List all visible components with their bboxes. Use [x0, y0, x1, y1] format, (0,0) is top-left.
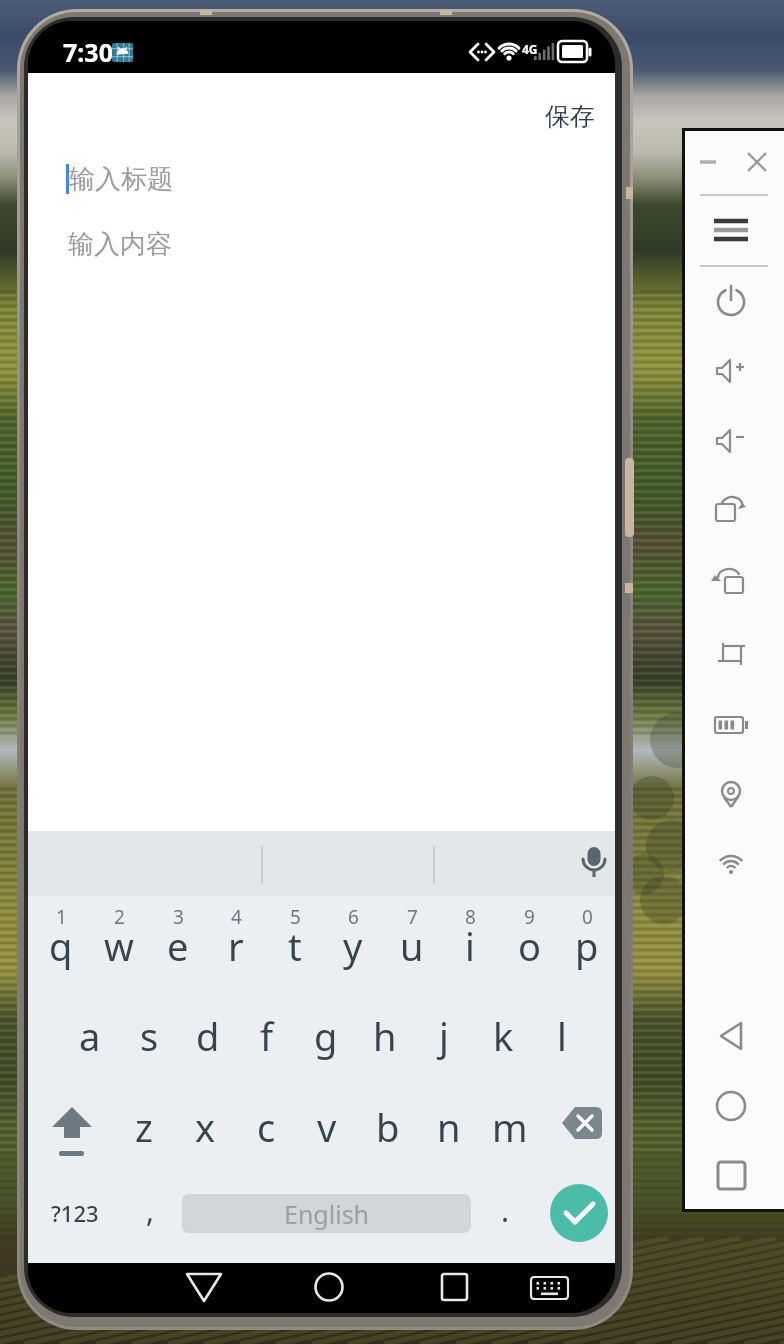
- staticText: 8: [465, 904, 476, 926]
- staticText: l: [557, 1010, 567, 1062]
- staticText: 9: [524, 904, 535, 926]
- button[interactable]: ,: [122, 1184, 178, 1236]
- button[interactable]: a: [62, 1010, 118, 1062]
- button[interactable]: [707, 288, 755, 336]
- button[interactable]: [707, 216, 755, 264]
- button[interactable]: k: [475, 1010, 531, 1062]
- staticText: 保存: [545, 101, 595, 132]
- staticText: n: [437, 1101, 461, 1153]
- staticText: c: [257, 1101, 276, 1153]
- staticText: e: [167, 920, 189, 972]
- button[interactable]: [707, 851, 755, 899]
- button[interactable]: g: [298, 1010, 354, 1062]
- button[interactable]: English: [182, 1194, 471, 1233]
- button[interactable]: 输入内容: [64, 218, 615, 270]
- staticText: z: [135, 1101, 153, 1153]
- staticText: t: [288, 920, 302, 972]
- staticText: 输入内容: [68, 228, 172, 261]
- staticText: 2: [114, 904, 125, 926]
- button[interactable]: 保存: [539, 95, 601, 138]
- staticText: q: [49, 920, 73, 972]
- button[interactable]: [707, 569, 755, 617]
- staticText: v: [317, 1101, 337, 1153]
- button[interactable]: [579, 831, 609, 891]
- button[interactable]: n: [421, 1101, 477, 1153]
- button[interactable]: [707, 357, 755, 405]
- staticText: a: [79, 1010, 101, 1062]
- button[interactable]: [432, 1263, 476, 1313]
- staticText: o: [518, 920, 541, 972]
- staticText: 3: [173, 904, 184, 926]
- button[interactable]: s: [121, 1010, 177, 1062]
- staticText: x: [195, 1101, 216, 1153]
- staticText: f: [260, 1010, 274, 1062]
- button[interactable]: [182, 1263, 226, 1313]
- staticText: g: [314, 1010, 338, 1062]
- button[interactable]: [44, 1101, 100, 1157]
- button[interactable]: ?123: [44, 1187, 106, 1239]
- staticText: 1: [56, 904, 67, 926]
- staticText: p: [575, 920, 599, 972]
- staticText: r: [228, 920, 244, 972]
- button[interactable]: [550, 1184, 608, 1242]
- staticText: h: [373, 1010, 397, 1062]
- staticText: 7:30: [63, 35, 113, 69]
- staticText: ,: [146, 1190, 155, 1231]
- button[interactable]: o: [501, 920, 557, 972]
- button[interactable]: l: [534, 1010, 590, 1062]
- button[interactable]: .: [477, 1184, 533, 1236]
- staticText: 4: [231, 904, 242, 926]
- button[interactable]: p: [559, 920, 615, 972]
- staticText: 4G: [522, 41, 538, 57]
- button[interactable]: b: [360, 1101, 416, 1153]
- button[interactable]: c: [238, 1101, 294, 1153]
- staticText: 0: [582, 904, 593, 926]
- staticText: 5: [290, 904, 301, 926]
- button[interactable]: 输入标题: [64, 153, 615, 205]
- staticText: 输入标题: [69, 163, 173, 196]
- button[interactable]: m: [482, 1101, 538, 1153]
- staticText: j: [439, 1010, 449, 1062]
- staticText: English: [284, 1197, 370, 1231]
- button[interactable]: [307, 1263, 351, 1313]
- button[interactable]: f: [239, 1010, 295, 1062]
- staticText: b: [376, 1101, 400, 1153]
- button[interactable]: q: [33, 920, 89, 972]
- staticText: d: [196, 1010, 220, 1062]
- staticText: 7: [407, 904, 418, 926]
- button[interactable]: z: [116, 1101, 172, 1153]
- button[interactable]: h: [357, 1010, 413, 1062]
- staticText: s: [140, 1010, 159, 1062]
- button[interactable]: [707, 1022, 755, 1070]
- button[interactable]: y: [325, 920, 381, 972]
- staticText: ?123: [51, 1198, 99, 1228]
- button[interactable]: i: [442, 920, 498, 972]
- staticText: m: [492, 1101, 528, 1153]
- button[interactable]: [707, 781, 755, 829]
- staticText: k: [493, 1010, 514, 1062]
- button[interactable]: [554, 1101, 610, 1145]
- button[interactable]: e: [150, 920, 206, 972]
- button[interactable]: t: [267, 920, 323, 972]
- button[interactable]: [707, 711, 755, 759]
- staticText: 6: [348, 904, 359, 926]
- button[interactable]: d: [180, 1010, 236, 1062]
- button[interactable]: x: [177, 1101, 233, 1153]
- button[interactable]: [707, 498, 755, 546]
- staticText: u: [400, 920, 424, 972]
- button[interactable]: [707, 427, 755, 475]
- button[interactable]: u: [384, 920, 440, 972]
- button[interactable]: [707, 1162, 755, 1210]
- staticText: .: [501, 1190, 510, 1231]
- staticText: w: [104, 920, 134, 972]
- button[interactable]: r: [208, 920, 264, 972]
- staticText: y: [343, 920, 363, 972]
- staticText: i: [465, 920, 475, 972]
- button[interactable]: j: [416, 1010, 472, 1062]
- button[interactable]: [707, 641, 755, 689]
- button[interactable]: v: [299, 1101, 355, 1153]
- button[interactable]: [528, 1263, 572, 1313]
- button[interactable]: w: [91, 920, 147, 972]
- button[interactable]: [707, 1092, 755, 1140]
